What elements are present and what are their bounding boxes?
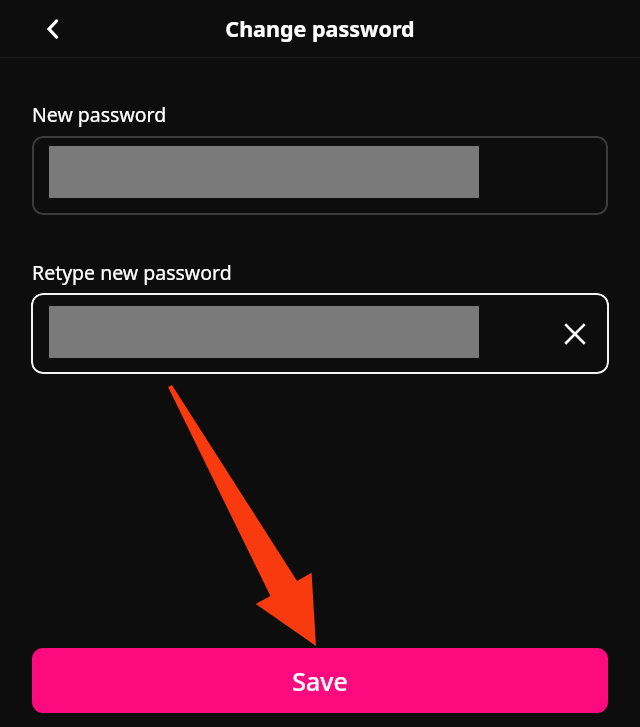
button[interactable]: Clear text [31, 293, 609, 374]
staticText: Save [292, 664, 348, 698]
staticText: Retype new password [32, 259, 232, 286]
staticText: Change password [0, 14, 640, 43]
button[interactable]: Back [33, 0, 73, 57]
button[interactable]: Clear text [553, 312, 597, 356]
staticText: New password [32, 101, 167, 128]
button[interactable]: Save [32, 648, 608, 713]
button[interactable] [32, 136, 608, 215]
